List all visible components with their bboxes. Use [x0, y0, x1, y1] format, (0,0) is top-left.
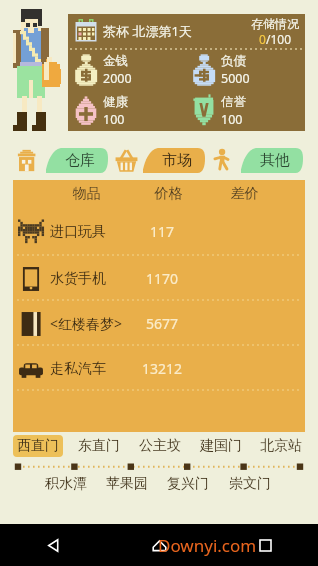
staticText: 茶杯 北漂第1天: [103, 22, 192, 40]
button[interactable]: 北京站: [256, 435, 306, 457]
staticText: 积水潭: [45, 475, 87, 493]
button[interactable]: 建国门: [196, 435, 246, 457]
staticText: 北京站: [260, 437, 302, 455]
button[interactable]: 积水潭: [41, 473, 91, 495]
staticText: /100: [266, 31, 292, 47]
staticText: 100: [103, 111, 125, 128]
staticText: 复兴门: [167, 475, 209, 493]
staticText: 负债: [221, 53, 246, 69]
staticText: 其他: [260, 151, 290, 170]
staticText: Downyi.com: [158, 534, 257, 557]
button[interactable]: 进口玩具: [13, 207, 305, 256]
staticText: 东直门: [78, 437, 120, 455]
button[interactable]: 苹果园: [102, 473, 152, 495]
button[interactable]: 其他图标: [210, 148, 233, 171]
staticText: 苹果园: [106, 475, 148, 493]
staticText: 100: [221, 111, 243, 128]
staticText: 117: [130, 222, 194, 241]
staticText: 1170: [130, 269, 194, 288]
button[interactable]: 崇文门: [225, 473, 275, 495]
button[interactable]: 其他: [241, 148, 303, 173]
button[interactable]: 西直门: [13, 435, 63, 457]
staticText: 金钱: [103, 53, 128, 69]
staticText: 5000: [221, 70, 250, 87]
staticText: 市场: [162, 151, 192, 170]
staticText: 差价: [217, 185, 272, 203]
button[interactable]: 水货手机: [13, 256, 305, 301]
button[interactable]: 东直门: [74, 435, 124, 457]
button[interactable]: 仓库: [46, 148, 108, 173]
staticText: 5677: [130, 314, 194, 333]
staticText: 公主坟: [139, 437, 181, 455]
staticText: 建国门: [200, 437, 242, 455]
staticText: 进口玩具: [50, 223, 130, 241]
staticText: 价格: [141, 185, 196, 203]
staticText: <红楼春梦>: [50, 314, 130, 333]
button[interactable]: 市场图标: [114, 148, 139, 173]
staticText: 水货手机: [50, 270, 130, 288]
button[interactable]: 仓库图标: [15, 149, 38, 172]
staticText: 仓库: [65, 151, 95, 170]
staticText: 健康: [103, 94, 128, 110]
staticText: 13212: [130, 359, 194, 378]
button[interactable]: Home: [106, 524, 212, 566]
button[interactable]: <红楼春梦>: [13, 301, 305, 346]
staticText: 2000: [103, 70, 132, 87]
button[interactable]: 走私汽车: [13, 346, 305, 391]
staticText: 崇文门: [229, 475, 271, 493]
button[interactable]: 复兴门: [163, 473, 213, 495]
button[interactable]: 公主坟: [135, 435, 185, 457]
staticText: 0: [259, 31, 266, 47]
button[interactable]: Back: [0, 524, 106, 566]
staticText: 西直门: [17, 437, 59, 455]
staticText: 存储情况: [251, 16, 299, 31]
staticText: 走私汽车: [50, 360, 130, 378]
button[interactable]: 市场: [143, 148, 205, 173]
staticText: 物品: [59, 185, 114, 203]
staticText: 信誉: [221, 94, 246, 110]
button[interactable]: Recents: [212, 524, 318, 566]
